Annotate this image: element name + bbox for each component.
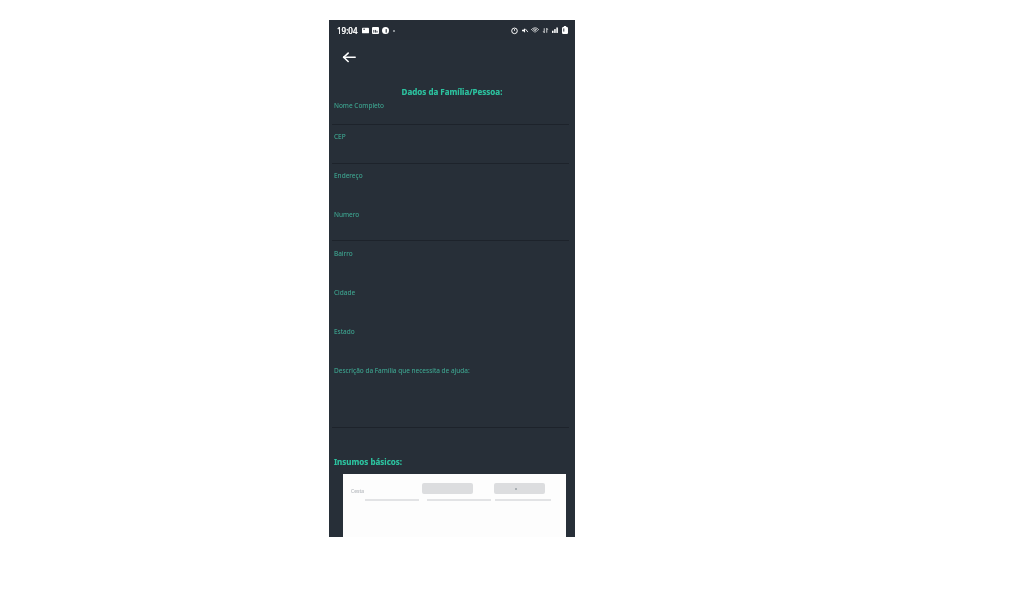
- button[interactable]: Endereço: [329, 164, 575, 241]
- staticText: Nome Completo: [334, 101, 385, 110]
- button[interactable]: Cidade: [329, 280, 575, 319]
- staticText: CEP: [334, 132, 346, 141]
- staticText: Estado: [334, 327, 355, 336]
- staticText: Descrição da Família que necessita de aj…: [334, 366, 470, 375]
- button[interactable]: Descrição da Família que necessita de aj…: [329, 358, 575, 428]
- staticText: Cidade: [334, 288, 356, 297]
- button[interactable]: Nome Completo: [329, 97, 575, 125]
- staticText: Dados da Família/Pessoa:: [329, 86, 575, 97]
- staticText: Cesta: [351, 488, 364, 495]
- staticText: Insumos básicos:: [334, 456, 403, 467]
- button[interactable]: Back: [336, 44, 362, 70]
- staticText: Bairro: [334, 249, 353, 258]
- staticText: Endereço: [334, 171, 363, 180]
- staticText: Numero: [334, 210, 360, 219]
- button[interactable]: Cesta: [343, 474, 566, 537]
- button[interactable]: Estado: [329, 319, 575, 358]
- button[interactable]: Bairro: [329, 241, 575, 280]
- staticText: 19:04: [337, 25, 358, 36]
- button[interactable]: CEP: [329, 125, 575, 164]
